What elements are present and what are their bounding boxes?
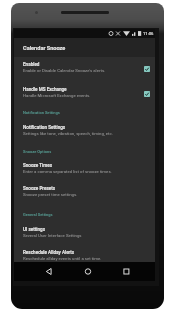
staticText: Snooze Presets — [23, 186, 56, 191]
staticText: Settings like tone, vibration, speech, t… — [23, 131, 113, 136]
button[interactable]: UI settings — [14, 223, 155, 245]
staticText: Calendar Snooze — [23, 45, 66, 52]
staticText: Notification Settings — [23, 110, 60, 115]
button[interactable]: Handle MS Exchange — [14, 83, 155, 105]
button[interactable]: Recent apps — [116, 262, 136, 281]
button[interactable]: Snooze Presets — [14, 182, 155, 204]
staticText: Enabled — [23, 62, 40, 67]
button[interactable]: Enabled — [14, 58, 155, 80]
staticText: 11:06 — [143, 31, 154, 36]
staticText: General Settings — [23, 212, 53, 217]
staticText: Enter a comma separated list of snooze t… — [23, 169, 112, 174]
staticText: Handle Microsoft Exchange events. — [23, 93, 91, 98]
staticText: Notification Settings — [23, 125, 66, 130]
button[interactable]: Calendar Snooze — [14, 38, 155, 57]
staticText: Snooze preset time settings. — [23, 192, 78, 197]
staticText: Several User Interface Settings — [23, 233, 82, 238]
staticText: Enable or Disable Calendar Snooze's aler… — [23, 68, 106, 73]
staticText: UI settings — [23, 227, 46, 232]
staticText: Reschedule Allday Alerts — [23, 250, 75, 255]
button[interactable]: Back — [42, 262, 62, 281]
button[interactable]: Home — [78, 262, 98, 281]
button[interactable]: Snooze Times — [14, 159, 155, 181]
staticText: Reschedule allday events until a set tim… — [23, 256, 102, 261]
staticText: Snooze Times — [23, 163, 53, 168]
staticText: Handle MS Exchange — [23, 87, 67, 92]
button[interactable]: Reschedule Allday Alerts — [14, 246, 155, 268]
button[interactable]: Notification Settings — [14, 121, 155, 143]
staticText: Snooze Options — [23, 149, 52, 154]
